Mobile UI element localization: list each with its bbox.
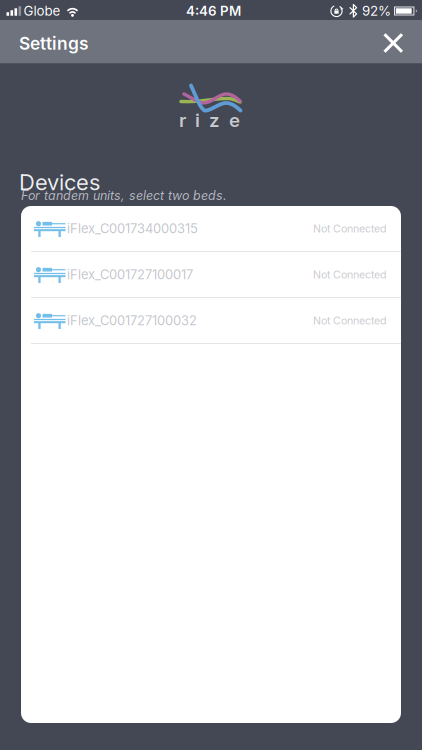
staticText: 92% [362,3,391,19]
staticText: For tandem units, select two beds. [21,188,227,203]
staticText: Settings [19,33,89,54]
staticText: Not Connected [313,222,387,235]
staticText: i [195,109,200,132]
button[interactable]: Close [384,32,422,52]
staticText: 4:46 PM [186,3,241,19]
staticText: r [179,109,186,132]
staticText: Not Connected [313,268,387,281]
staticText: z [209,109,220,132]
staticText: e [229,109,240,132]
staticText: Globe [23,3,60,19]
button[interactable]: iFlex_C001734000315 [21,206,401,251]
staticText: Devices [19,169,100,196]
staticText: iFlex_C001734000315 [67,221,198,236]
button[interactable]: iFlex_C001727100032 [21,298,401,343]
button[interactable]: iFlex_C001727100017 [21,252,401,297]
staticText: iFlex_C001727100017 [67,267,193,282]
staticText: Not Connected [313,314,387,327]
staticText: iFlex_C001727100032 [67,313,197,328]
